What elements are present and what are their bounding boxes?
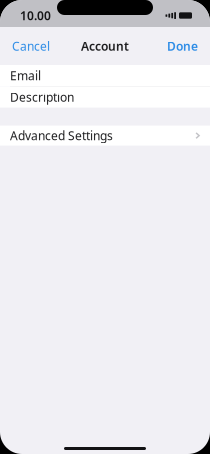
button[interactable]: Done xyxy=(158,33,207,59)
button[interactable]: Advanced Settings xyxy=(0,126,210,146)
staticText: Advanced Settings xyxy=(10,128,113,143)
staticText: Account xyxy=(81,38,129,54)
staticText: 10.00 xyxy=(20,7,51,23)
staticText: Email xyxy=(10,67,41,83)
staticText: Description xyxy=(10,89,74,105)
staticText: Done xyxy=(167,38,198,54)
staticText: Cancel xyxy=(12,38,50,54)
button[interactable]: Description xyxy=(0,87,210,108)
button[interactable]: Email xyxy=(0,65,210,86)
button[interactable]: Cancel xyxy=(3,33,59,59)
